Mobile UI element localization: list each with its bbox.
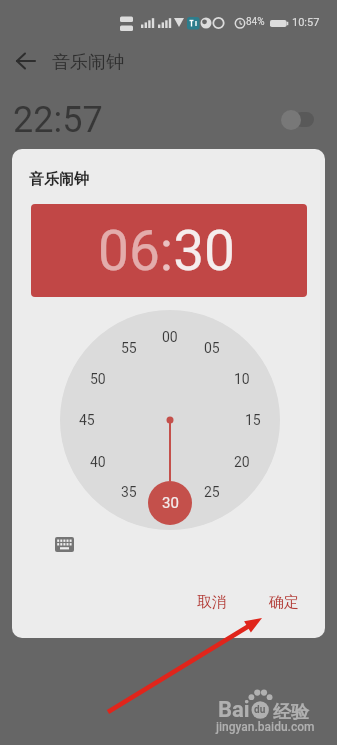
staticText: 10 (234, 371, 250, 387)
staticText: 取消 (197, 593, 227, 612)
button[interactable]: 30 (148, 481, 192, 525)
staticText: 确定 (269, 593, 299, 612)
staticText: 55 (121, 340, 137, 356)
staticText: 音乐闹钟 (52, 51, 124, 74)
staticText: Bai (218, 697, 250, 723)
staticText: 20 (234, 454, 250, 470)
button[interactable]: 确定 (258, 582, 310, 622)
staticText: 经验 (273, 701, 309, 724)
button[interactable] (55, 537, 74, 552)
staticText: 84% (246, 16, 265, 28)
staticText: 25 (204, 484, 220, 500)
staticText: 22:57 (13, 99, 103, 141)
button[interactable]: 06:30 (31, 204, 307, 297)
staticText: 30 (162, 494, 179, 512)
staticText: 40 (90, 454, 106, 470)
staticText: 15 (245, 412, 261, 428)
staticText: 35 (121, 484, 137, 500)
staticText: 10:57 (292, 16, 320, 29)
staticText: jingyan.baidu.com (216, 720, 315, 734)
staticText: 00 (162, 329, 178, 345)
staticText: 50 (90, 371, 106, 387)
button[interactable] (281, 110, 315, 130)
button[interactable]: 取消 (186, 582, 238, 622)
staticText: 音乐闹钟 (29, 170, 89, 189)
staticText: 06:30 (98, 219, 235, 283)
staticText: du (254, 704, 266, 716)
staticText: 45 (79, 412, 95, 428)
button[interactable] (16, 51, 36, 71)
staticText: 05 (204, 340, 220, 356)
